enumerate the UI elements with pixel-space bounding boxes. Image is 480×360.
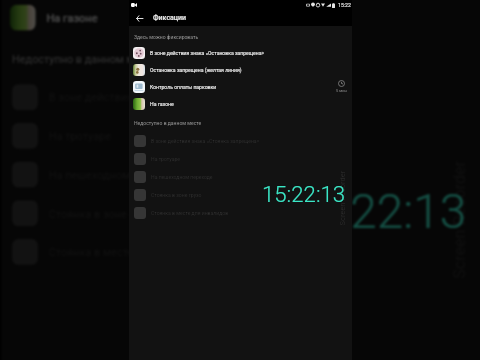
button[interactable]: На тротуаре	[1, 116, 480, 155]
button[interactable]: На газоне	[129, 95, 352, 112]
staticText: Контроль оплаты парковки	[150, 84, 335, 90]
button[interactable]: В зоне действия знака «Стоянка запрещена…	[129, 132, 352, 150]
button[interactable]: В зоне действия знака «Стоянка запрещена…	[1, 78, 480, 116]
staticText: В зоне действия знака «Стоянка запрещена…	[151, 138, 260, 144]
staticText: Стоянка в зоне грузо	[49, 207, 158, 220]
staticText: 15:22:13	[287, 183, 468, 239]
staticText: В зоне действия знака «Стоянка запрещена…	[49, 91, 283, 104]
button[interactable]: Стоянка в зоне грузо	[1, 194, 480, 233]
staticText: Стоянка в месте для инвалидов	[151, 210, 229, 216]
button[interactable]: Стоянка в зоне грузо	[129, 186, 352, 204]
button[interactable]: Back	[132, 11, 146, 25]
staticText: Screen Recorder	[337, 170, 346, 225]
staticText: Недоступно в данном месте	[12, 52, 158, 65]
staticText: 5 мин	[336, 88, 347, 93]
staticText: На пешеходном переходе	[49, 168, 182, 181]
staticText: Стоянка в зоне грузо	[151, 192, 202, 198]
staticText: 15:22:13	[262, 181, 346, 207]
staticText: В зоне действия знака «Остановка запреще…	[150, 50, 348, 56]
button[interactable]: На газоне	[1, 0, 480, 35]
staticText: Screen Recorder	[450, 161, 469, 279]
staticText: На газоне	[150, 101, 348, 107]
button[interactable]: В зоне действия знака «Остановка запреще…	[129, 44, 352, 61]
staticText: 15:22	[338, 2, 351, 8]
staticText: Стоянка в месте для инвалидов	[49, 245, 216, 258]
staticText: На пешеходном переходе	[151, 174, 213, 180]
button[interactable]: Контроль оплаты парковки	[129, 78, 352, 95]
staticText: На тротуаре	[151, 156, 181, 162]
staticText: Здесь можно фиксировать	[134, 34, 199, 40]
staticText: Остановка запрещена (желтая линия)	[150, 67, 348, 73]
button[interactable]: Стоянка в месте для инвалидов	[1, 233, 480, 271]
button[interactable]: Стоянка в месте для инвалидов	[129, 204, 352, 222]
button[interactable]: Остановка запрещена (желтая линия)	[129, 61, 352, 78]
button[interactable]: На пешеходном переходе	[129, 168, 352, 186]
staticText: Фиксации	[153, 14, 187, 22]
staticText: На газоне	[46, 11, 472, 24]
staticText: Недоступно в данном месте	[134, 120, 202, 126]
button[interactable]: На тротуаре	[129, 150, 352, 168]
button[interactable]: На пешеходном переходе	[1, 155, 480, 194]
